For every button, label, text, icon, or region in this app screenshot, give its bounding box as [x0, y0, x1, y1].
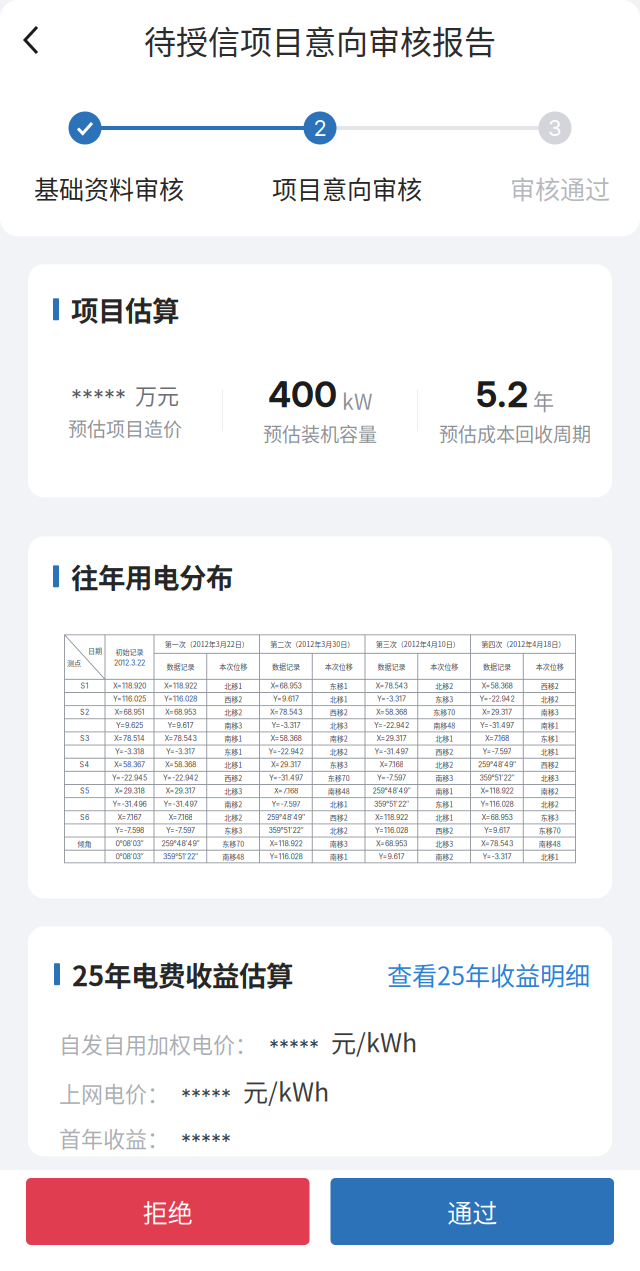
staticText: 北移3 — [435, 838, 453, 849]
button[interactable]: 通过 — [330, 1178, 614, 1245]
staticText: 北移3 — [224, 786, 242, 796]
staticText: 2 — [313, 115, 326, 141]
staticText: X=7.168 — [168, 813, 192, 822]
staticText: Y=-7.597 — [166, 826, 195, 835]
staticText: 北移2 — [224, 812, 242, 822]
staticText: 0°08′03″ — [115, 852, 143, 861]
staticText: 往年用电分布 — [71, 556, 233, 596]
staticText: X=58.368 — [165, 760, 196, 769]
staticText: 南移48 — [328, 786, 350, 796]
staticText: 自发自用加权电价： — [59, 1027, 257, 1059]
staticText: 东移3 — [541, 812, 559, 822]
staticText: 日期 — [88, 646, 102, 656]
staticText: Y=116.028 — [164, 695, 197, 703]
staticText: 待授信项目意向审核报告 — [144, 17, 496, 63]
staticText: 第二次（2012年3月30日） — [270, 639, 354, 649]
staticText: 首年收益： — [59, 1122, 169, 1154]
staticText: X=58.367 — [114, 760, 145, 769]
staticText: 北移2 — [224, 707, 242, 717]
staticText: 北移2 — [330, 746, 348, 757]
staticText: 倾角 — [77, 838, 91, 849]
staticText: 西移2 — [330, 812, 348, 822]
staticText: 北移1 — [224, 681, 242, 691]
staticText: Y=-7.597 — [482, 747, 511, 756]
staticText: 西移2 — [330, 707, 348, 717]
staticText: 南移2 — [224, 799, 242, 809]
staticText: 南移2 — [541, 786, 559, 796]
staticText: Y=-22.945 — [112, 774, 147, 782]
staticText: 数据记录 — [272, 661, 300, 671]
staticText: X=78.543 — [375, 682, 407, 690]
staticText: X=7.167 — [117, 813, 141, 822]
staticText: Y=-22.942 — [374, 721, 409, 730]
staticText: 东移70 — [328, 773, 350, 783]
staticText: S6 — [80, 813, 89, 822]
staticText: Y=9.625 — [116, 721, 143, 730]
staticText: 东移1 — [541, 733, 559, 744]
staticText: 北移1 — [541, 852, 559, 862]
staticText: 南移2 — [330, 733, 348, 744]
staticText: 259°48′49″ — [478, 760, 516, 769]
staticText: 第三次（2012年4月10日） — [376, 639, 460, 649]
staticText: X=29.317 — [271, 760, 301, 769]
staticText: 北移2 — [330, 825, 348, 836]
button[interactable]: 查看25年收益明细 — [387, 956, 590, 992]
staticText: 数据记录 — [377, 661, 405, 671]
staticText: Y=-3.317 — [166, 747, 195, 756]
staticText: 预估项目造价 — [68, 414, 182, 442]
staticText: Y=-31.497 — [163, 800, 197, 808]
staticText: 元/kWh — [243, 1072, 329, 1109]
staticText: 南移1 — [224, 733, 242, 744]
staticText: 本次位移 — [219, 661, 247, 671]
staticText: 北移3 — [541, 773, 559, 783]
staticText: 359°51′22″ — [268, 826, 303, 835]
staticText: X=68.953 — [376, 839, 407, 848]
staticText: 北移1 — [330, 694, 348, 704]
staticText: Y=-31.497 — [374, 747, 408, 756]
staticText: Y=-3.318 — [115, 747, 144, 756]
staticText: X=68.951 — [114, 708, 144, 716]
staticText: S1 — [80, 682, 88, 690]
staticText: X=29.318 — [114, 787, 144, 795]
staticText: Y=-31.496 — [112, 800, 146, 808]
staticText: X=78.543 — [270, 708, 302, 716]
staticText: 北移2 — [435, 760, 453, 770]
staticText: 南移3 — [435, 773, 453, 783]
staticText: X=7.168 — [379, 760, 403, 769]
staticText: S5 — [80, 787, 89, 795]
staticText: S4 — [79, 760, 89, 769]
staticText: 南移2 — [435, 852, 453, 862]
staticText: 东移1 — [330, 681, 348, 691]
staticText: 数据记录 — [483, 661, 511, 671]
staticText: 北移1 — [330, 799, 348, 809]
staticText: Y=9.617 — [273, 695, 299, 703]
staticText: 东移70 — [222, 838, 244, 849]
staticText: 南移48 — [433, 720, 455, 730]
staticText: X=118.922 — [269, 839, 302, 848]
staticText: Y=-7.597 — [377, 774, 406, 782]
staticText: 数据记录 — [166, 661, 194, 671]
staticText: 北移3 — [330, 720, 348, 730]
staticText: 南移1 — [541, 720, 559, 730]
staticText: Y=-7.598 — [115, 826, 144, 835]
staticText: 南移48 — [222, 852, 244, 862]
staticText: 2012.3.22 — [114, 659, 145, 667]
staticText: 3 — [548, 115, 562, 141]
button[interactable]: 返回 — [0, 13, 56, 67]
staticText: 南移3 — [541, 707, 559, 717]
staticText: 南移48 — [539, 838, 561, 849]
staticText: 西移2 — [541, 760, 559, 770]
staticText: 北移2 — [541, 694, 559, 704]
staticText: kW — [342, 385, 372, 416]
staticText: X=58.368 — [376, 708, 407, 716]
button[interactable]: 拒绝 — [26, 1178, 309, 1245]
staticText: 0°08′03″ — [115, 839, 143, 848]
staticText: S3 — [80, 734, 89, 743]
staticText: 第一次（2012年3月22日） — [165, 639, 249, 649]
staticText: 东移3 — [435, 694, 453, 704]
staticText: 上网电价： — [59, 1077, 169, 1109]
staticText: 359°51′22″ — [374, 800, 409, 808]
staticText: 西移2 — [541, 681, 559, 691]
staticText: 拒绝 — [143, 1193, 193, 1230]
staticText: 西移2 — [435, 746, 453, 757]
